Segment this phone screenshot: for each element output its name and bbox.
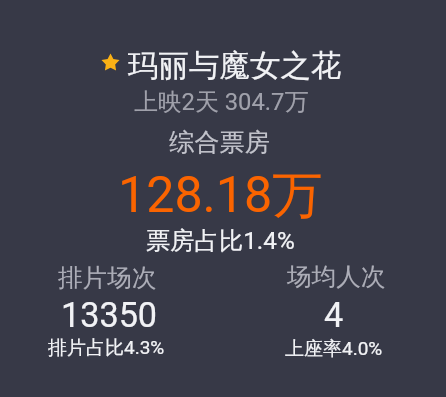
- staticText: 综合票房: [169, 127, 270, 159]
- staticText: 上座率4.0%: [285, 337, 383, 361]
- staticText: 128.18万: [118, 164, 323, 227]
- staticText: 排片场次: [58, 262, 157, 293]
- other: Favourite: [101, 53, 120, 72]
- staticText: 13350: [61, 295, 158, 335]
- staticText: 票房占比1.4%: [146, 226, 295, 257]
- staticText: 玛丽与魔女之花: [128, 47, 342, 85]
- staticText: 场均人次: [287, 261, 386, 292]
- staticText: 4: [324, 295, 344, 335]
- staticText: 排片占比4.3%: [48, 336, 165, 360]
- staticText: 上映2天 304.7万: [134, 87, 309, 117]
- button[interactable]: 玛丽与魔女之花: [0, 0, 446, 397]
